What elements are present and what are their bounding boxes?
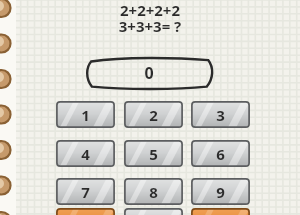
staticText: 3 — [216, 105, 225, 125]
button[interactable]: 9 — [191, 178, 250, 205]
button[interactable]: Enter — [191, 208, 250, 215]
staticText: 2 — [149, 105, 158, 125]
button[interactable]: 1 — [56, 101, 115, 128]
button[interactable]: 4 — [56, 140, 115, 167]
staticText: 2+2+2+2 — [100, 0, 200, 17]
button[interactable]: 7 — [56, 178, 115, 205]
staticText: 7 — [81, 182, 90, 202]
staticText: 5 — [149, 144, 158, 164]
button[interactable]: 6 — [191, 140, 250, 167]
staticText: 6 — [216, 144, 225, 164]
button[interactable]: 3 — [191, 101, 250, 128]
staticText: 4 — [81, 144, 90, 164]
button[interactable]: 5 — [124, 140, 183, 167]
staticText: 9 — [216, 182, 225, 202]
staticText: 1 — [81, 105, 90, 125]
button[interactable]: 2 — [124, 101, 183, 128]
button[interactable]: Clear — [56, 208, 115, 215]
staticText: 0 — [144, 62, 154, 84]
button[interactable]: 0 — [124, 208, 183, 215]
staticText: 3+3+3= ? — [100, 16, 200, 34]
staticText: 8 — [149, 182, 158, 202]
button[interactable]: 0 — [84, 56, 214, 90]
button[interactable]: 8 — [124, 178, 183, 205]
